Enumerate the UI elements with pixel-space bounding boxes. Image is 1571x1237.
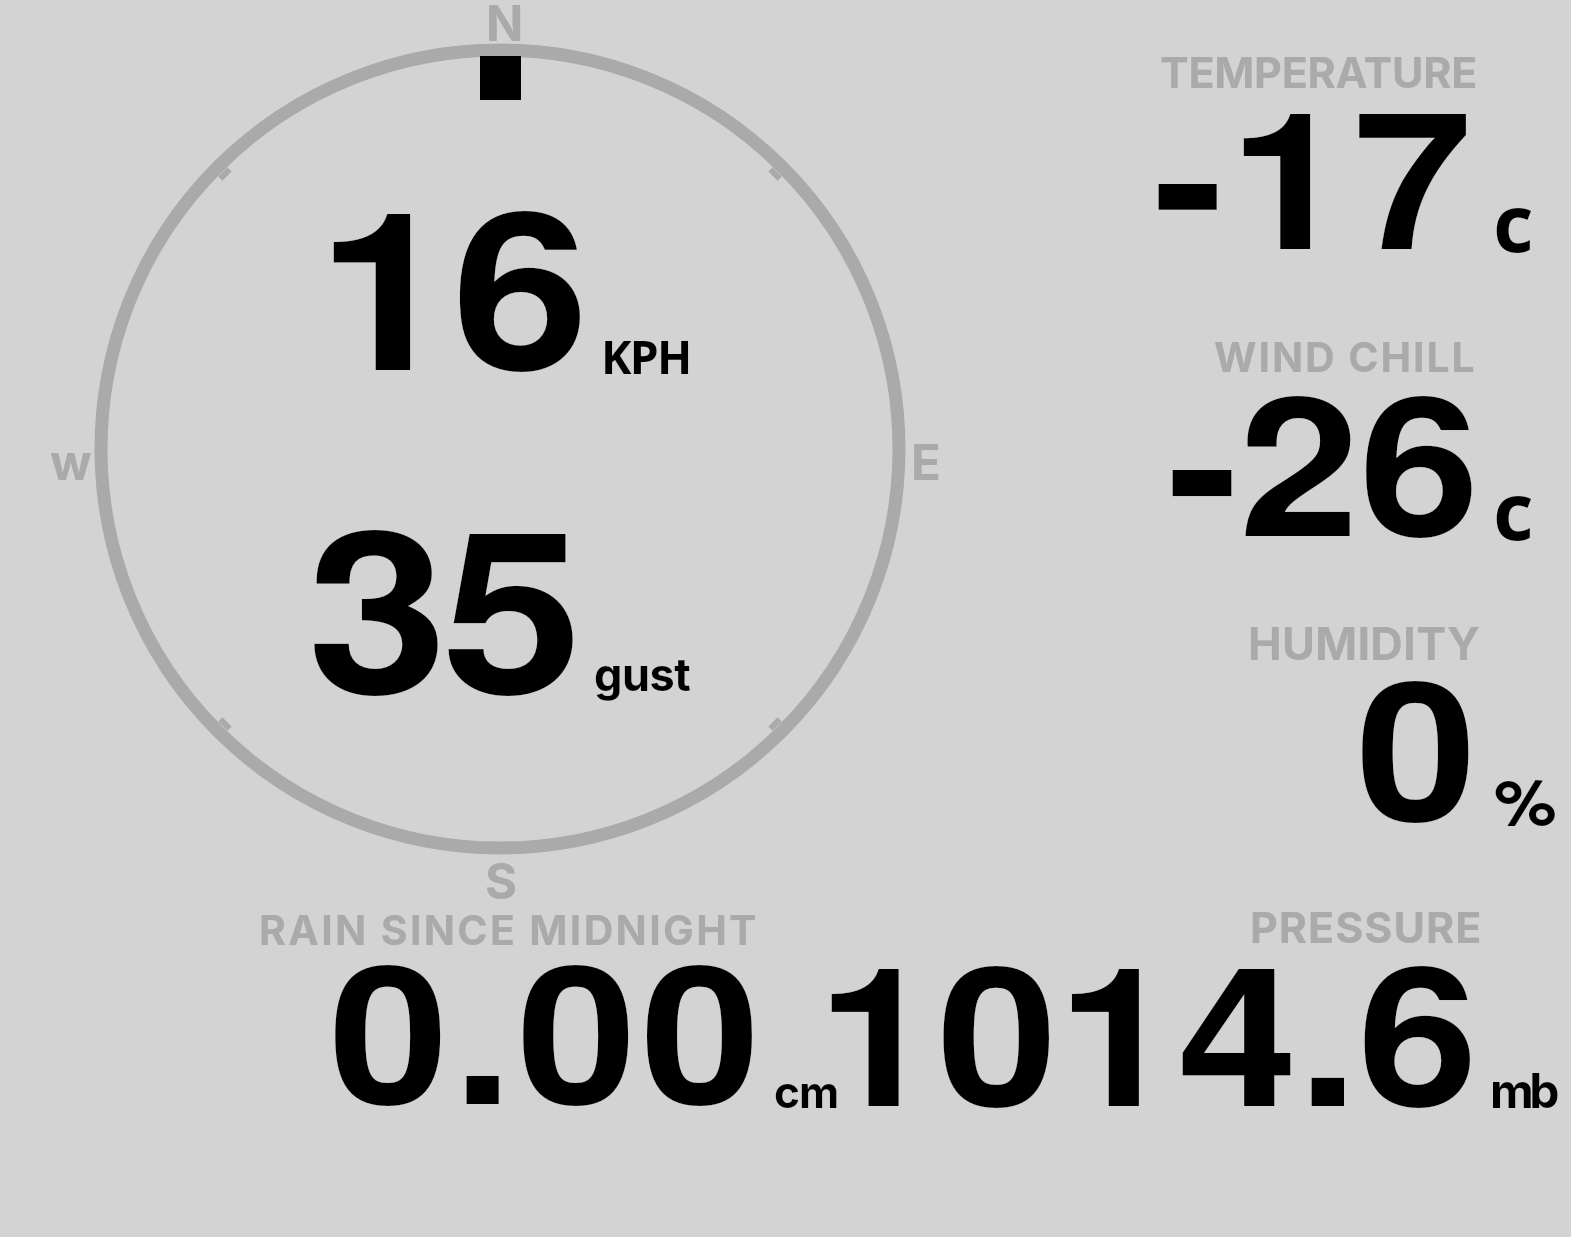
button[interactable]: Barometric pressure 1014.6 millibars — [810, 890, 1571, 1125]
staticText: PRESSURE — [1250, 901, 1483, 953]
staticText: gust — [594, 647, 691, 701]
staticText: mb — [1490, 1061, 1556, 1119]
staticText: 0.00 — [329, 888, 765, 1163]
staticText: % — [1494, 754, 1558, 844]
staticText: TEMPERATURE — [1160, 46, 1478, 98]
staticText: 35 — [307, 440, 577, 764]
staticText: E — [911, 433, 941, 492]
button[interactable]: Rain since midnight 0.00 centimetres — [240, 890, 810, 1125]
button[interactable]: Wind from north, 16 KPH, gusting 35 KPH — [40, 0, 1000, 900]
staticText: HUMIDITY — [1248, 616, 1481, 670]
staticText: S — [485, 852, 518, 911]
staticText: c — [1493, 169, 1534, 275]
staticText: N — [486, 0, 524, 53]
staticText: RAIN SINCE MIDNIGHT — [259, 905, 759, 955]
staticText: c — [1493, 457, 1534, 563]
staticText: w — [50, 433, 92, 492]
staticText: 0 — [1356, 603, 1477, 881]
staticText: 1014.6 — [817, 889, 1479, 1165]
button[interactable]: Humidity 0 percent — [1100, 604, 1571, 876]
staticText: KPH — [601, 325, 691, 388]
button[interactable]: Wind chill minus 26 degrees Celsius — [1100, 320, 1571, 592]
button[interactable]: Temperature minus 17 degrees Celsius — [1100, 36, 1571, 308]
staticText: 16 — [317, 122, 588, 437]
staticText: -17 — [1153, 34, 1478, 308]
staticText: WIND CHILL — [1214, 332, 1477, 382]
staticText: -26 — [1167, 319, 1479, 595]
staticText: cm — [774, 1065, 839, 1118]
